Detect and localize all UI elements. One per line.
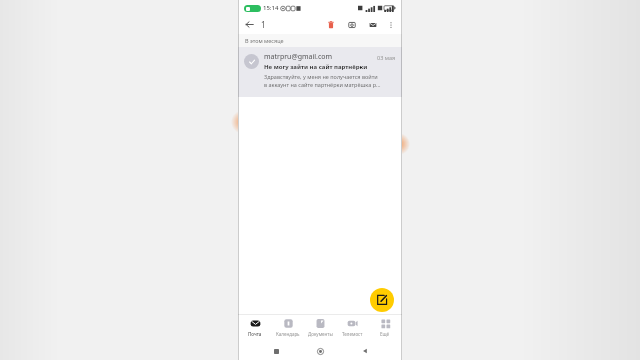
button[interactable]: Документы — [305, 317, 335, 338]
staticText: 15:14 — [263, 4, 279, 12]
staticText: в аккаунт на сайте партнёрки матрёшка р.… — [264, 81, 381, 88]
staticText: Ещё — [380, 331, 390, 337]
staticText: matrpru@gmail.com — [264, 52, 374, 62]
staticText: 1 — [261, 19, 266, 30]
button[interactable]: Прочитано — [365, 17, 380, 32]
button[interactable]: Недавние — [269, 344, 283, 358]
staticText: 03 мая — [377, 54, 396, 61]
button[interactable]: Почта — [240, 317, 270, 338]
staticText: Телемост — [342, 331, 363, 337]
staticText: Не могу зайти на сайт партнёрки — [264, 63, 368, 71]
button[interactable]: Ещё — [384, 18, 398, 32]
staticText: Почта — [248, 331, 262, 337]
button[interactable]: Написать письмо — [370, 288, 394, 312]
button[interactable]: matrpru@gmail.com — [238, 47, 402, 97]
button[interactable]: Календарь — [273, 317, 303, 338]
staticText: Календарь — [276, 331, 300, 337]
button[interactable]: Ещё — [370, 317, 400, 338]
button[interactable]: Домой — [313, 344, 327, 358]
button[interactable]: Удалить — [323, 17, 338, 32]
button[interactable]: В архив — [344, 17, 359, 32]
button[interactable]: Телемост — [337, 317, 367, 338]
staticText: В этом месяце — [245, 37, 284, 44]
staticText: Документы — [308, 331, 333, 337]
staticText: Здравствуйте, у меня не получается войти — [264, 73, 378, 80]
button[interactable]: Назад — [358, 344, 372, 358]
button[interactable]: Назад — [243, 18, 256, 31]
